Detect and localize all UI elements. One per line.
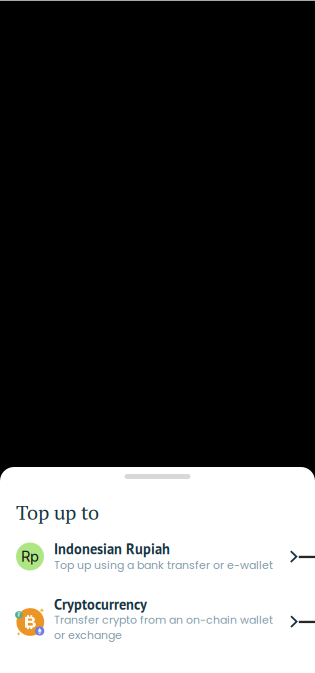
staticText: Top up using a bank transfer or e-wallet: [54, 557, 273, 573]
staticText: Top up to: [16, 499, 99, 525]
staticText: Indonesian Rupiah: [54, 539, 170, 558]
button[interactable]: Rp: [0, 534, 315, 576]
staticText: ₮: [17, 611, 21, 618]
staticText: Transfer crypto from an on-chain wallet …: [54, 612, 273, 643]
button[interactable]: ₮: [0, 595, 315, 651]
staticText: Cryptocurrency: [54, 595, 147, 614]
staticText: Rp: [21, 548, 39, 565]
